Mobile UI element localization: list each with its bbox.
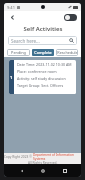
staticText: Copy Right 2023 © [4,155,33,159]
staticText: Reschedule [57,50,78,55]
button[interactable]: Reschedule [56,49,78,56]
button[interactable]: Search here... [8,36,77,45]
staticText: Target Group: Sect. Officers [17,83,64,88]
staticText: 9:41 [7,5,15,10]
button[interactable]: Home [38,166,47,175]
button[interactable]: Back [17,166,26,175]
staticText: Search here... [11,38,40,44]
button[interactable]: Pending [7,49,30,56]
button[interactable]: Back [8,13,17,22]
staticText: Date Time: 2023-11-02 10:30 AM [17,62,72,67]
button[interactable]: Recents [60,166,69,175]
staticText: Complete [34,50,52,55]
button[interactable]: Complete [32,49,54,56]
staticText: Self Activities [23,25,63,33]
staticText: Place: conference room [17,69,57,74]
button[interactable]: Department of Information Systems [33,153,81,161]
staticText: Pending [11,50,26,55]
button[interactable]: 1 [9,60,76,94]
staticText: All Rights Reserved. [28,161,58,164]
staticText: 1 [10,75,13,80]
staticText: Activity: self study discussion meeting … [17,76,73,81]
button[interactable]: Toggle [64,14,77,21]
